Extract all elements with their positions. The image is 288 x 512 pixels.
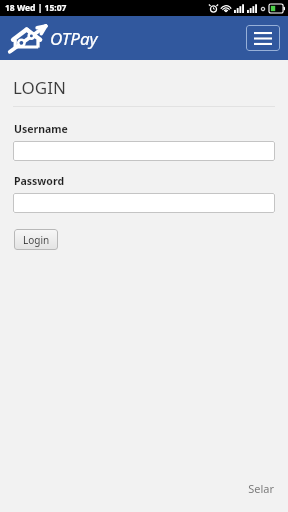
staticText: LOGIN <box>13 76 66 99</box>
button[interactable] <box>13 193 275 213</box>
button[interactable]: Open navigation menu <box>246 25 280 51</box>
staticText: OTPay <box>50 27 98 50</box>
button[interactable]: Login <box>14 229 58 250</box>
staticText: Login <box>23 233 50 247</box>
button[interactable] <box>13 141 275 161</box>
staticText: Username <box>14 122 68 136</box>
staticText: 18 Wed | 15:07 <box>5 2 67 14</box>
staticText: Password <box>14 174 65 188</box>
button[interactable]: OTPay <box>9 23 98 53</box>
staticText: Selar <box>0 481 274 496</box>
